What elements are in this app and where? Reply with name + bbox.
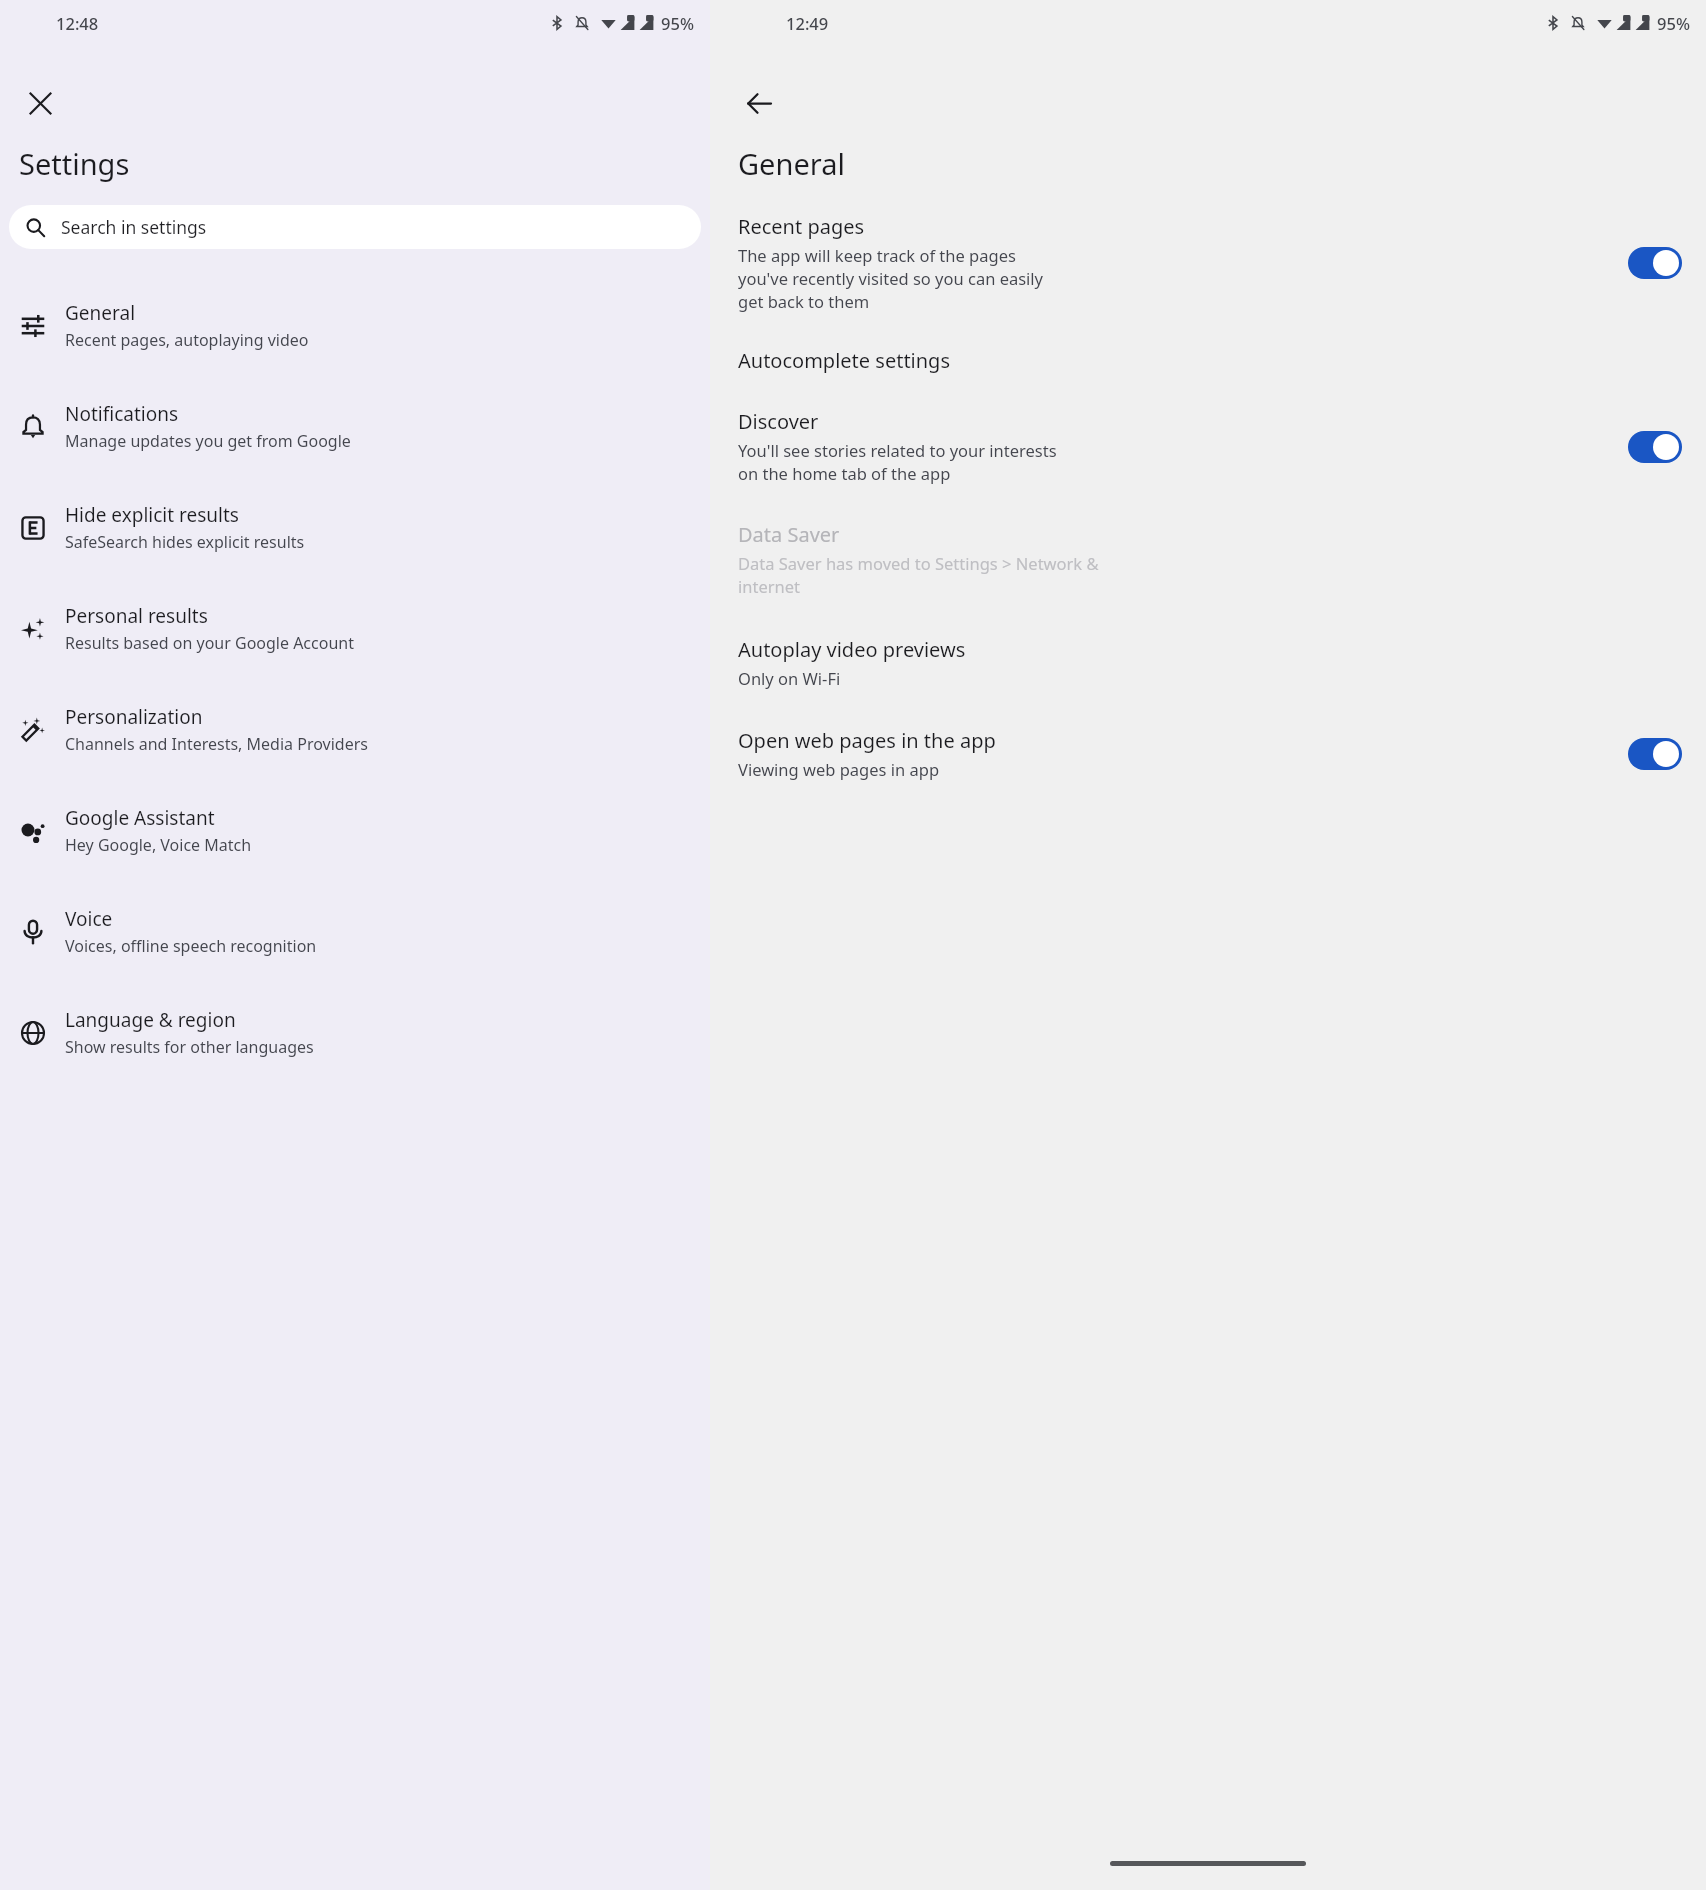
staticText: The app will keep track of the pages you… (738, 244, 1044, 313)
staticText: You'll see stories related to your inter… (738, 439, 1057, 485)
staticText: General (738, 144, 845, 183)
button[interactable]: Google Assistant (0, 780, 710, 881)
staticText: Settings (19, 144, 130, 183)
staticText: Personalization (65, 704, 203, 730)
button[interactable]: General (0, 275, 710, 376)
button[interactable]: Voice (0, 881, 710, 982)
staticText: Recent pages, autoplaying video (65, 329, 309, 351)
staticText: Personal results (65, 603, 208, 629)
staticText: Channels and Interests, Media Providers (65, 733, 368, 755)
button[interactable]: Back (732, 76, 786, 130)
staticText: Notifications (65, 401, 179, 427)
staticText: Data Saver has moved to Settings > Netwo… (738, 552, 1099, 598)
button[interactable]: Language & region (0, 982, 710, 1083)
button[interactable]: Personalization (0, 679, 710, 780)
staticText: 95% (661, 12, 694, 34)
staticText: 12:48 (56, 12, 99, 34)
staticText: Search in settings (61, 215, 207, 239)
button[interactable]: Search in settings (9, 205, 701, 249)
staticText: Recent pages (738, 213, 865, 240)
staticText: Autocomplete settings (738, 347, 950, 374)
button[interactable]: Open web pages in the app (710, 727, 1706, 780)
staticText: Google Assistant (65, 805, 215, 831)
staticText: Discover (738, 408, 819, 435)
staticText: 95% (1657, 12, 1690, 34)
staticText: Autoplay video previews (738, 636, 966, 663)
button[interactable]: Notifications (0, 376, 710, 477)
button[interactable]: Hide explicit results (0, 477, 710, 578)
button[interactable]: Autocomplete settings (710, 347, 1706, 374)
staticText: Show results for other languages (65, 1036, 314, 1058)
staticText: Open web pages in the app (738, 727, 996, 754)
staticText: Language & region (65, 1007, 236, 1033)
staticText: Data Saver (738, 521, 840, 548)
staticText: Hey Google, Voice Match (65, 834, 252, 856)
button[interactable]: Data Saver (710, 521, 1706, 598)
staticText: 12:49 (786, 12, 829, 34)
staticText: Results based on your Google Account (65, 632, 354, 654)
staticText: Voices, offline speech recognition (65, 935, 317, 957)
staticText: Voice (65, 906, 113, 932)
staticText: SafeSearch hides explicit results (65, 531, 305, 553)
staticText: Viewing web pages in app (738, 758, 940, 780)
button[interactable]: Discover (710, 408, 1706, 485)
staticText: Only on Wi-Fi (738, 667, 841, 689)
button[interactable]: Recent pages (710, 213, 1706, 313)
button[interactable]: Autoplay video previews (710, 636, 1706, 689)
button[interactable]: Personal results (0, 578, 710, 679)
staticText: Manage updates you get from Google (65, 430, 351, 452)
staticText: Hide explicit results (65, 502, 239, 528)
button[interactable]: Close (13, 76, 67, 130)
staticText: General (65, 300, 136, 326)
